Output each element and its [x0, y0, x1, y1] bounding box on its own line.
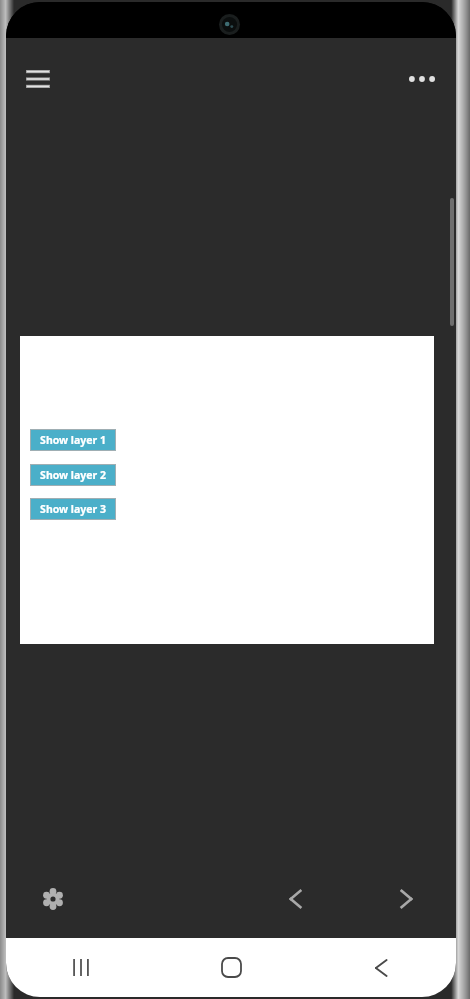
staticText: Show layer 1 — [40, 433, 106, 447]
button[interactable]: Show layer 2 — [31, 465, 115, 485]
staticText: Show layer 3 — [40, 502, 106, 516]
button[interactable]: Show layer 1 — [31, 430, 115, 450]
button[interactable]: Recents — [6, 938, 156, 997]
button[interactable]: Back — [306, 938, 456, 997]
button[interactable]: Show layer 3 — [31, 499, 115, 519]
button[interactable]: More options — [400, 57, 444, 101]
button[interactable]: Home — [156, 938, 306, 997]
button[interactable]: Settings — [32, 878, 74, 920]
staticText: Show layer 2 — [40, 468, 106, 482]
button[interactable]: Next — [380, 873, 432, 925]
button[interactable]: Menu — [16, 57, 60, 101]
button[interactable]: Previous — [270, 873, 322, 925]
